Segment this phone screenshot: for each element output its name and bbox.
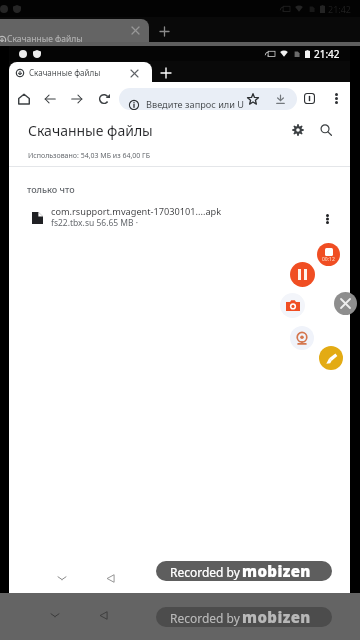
button[interactable]: New tab xyxy=(155,22,173,40)
button[interactable]: Draw xyxy=(319,346,343,370)
button[interactable]: Forward xyxy=(66,88,88,110)
button[interactable]: Stop recording xyxy=(317,243,340,266)
button[interactable]: Close tab xyxy=(127,22,143,38)
button[interactable]: Pause recording xyxy=(290,262,315,287)
button[interactable]: Back xyxy=(99,567,121,589)
staticText: Скачанные файлы xyxy=(29,67,101,78)
button[interactable]: Скачанные файлы xyxy=(0,19,149,44)
button[interactable]: Reload xyxy=(93,88,115,110)
button[interactable]: More options xyxy=(326,88,347,109)
staticText: mobizen xyxy=(242,607,311,627)
staticText: 21:42 xyxy=(314,47,340,61)
staticText: Скачанные файлы xyxy=(28,121,153,140)
staticText: только что xyxy=(27,183,75,195)
staticText: Использовано: 54,03 МБ из 64,00 ГБ xyxy=(28,151,150,161)
button[interactable]: Screenshot xyxy=(280,293,305,318)
staticText: 00:12 xyxy=(322,256,335,263)
staticText: mobizen xyxy=(242,561,311,581)
button[interactable]: Tabs xyxy=(299,88,320,109)
staticText: Recorded by xyxy=(170,564,240,580)
button[interactable]: Введите запрос или U xyxy=(119,88,297,110)
button[interactable]: More options xyxy=(316,207,339,230)
button[interactable]: Hide keyboard xyxy=(44,604,66,626)
button[interactable]: New tab xyxy=(157,64,175,82)
button[interactable]: Hide keyboard xyxy=(51,567,73,589)
staticText: Скачанные файлы xyxy=(7,33,83,44)
button[interactable]: Bookmark xyxy=(242,88,264,110)
staticText: Recorded by xyxy=(170,610,240,626)
button[interactable]: Settings xyxy=(286,118,309,141)
button[interactable]: Home xyxy=(13,88,35,110)
button[interactable]: Back xyxy=(39,88,61,110)
button[interactable]: Back xyxy=(92,604,114,626)
staticText: fs22.tbx.su 56.65 MB · xyxy=(51,217,139,229)
button[interactable]: Search xyxy=(314,118,337,141)
button[interactable]: Скачанные файлы xyxy=(9,62,152,82)
button[interactable]: Front camera xyxy=(290,326,314,350)
staticText: Введите запрос или U xyxy=(146,98,245,110)
button[interactable]: Close tab xyxy=(126,65,142,81)
staticText: com.rsupport.mvagent-17030101....apk xyxy=(51,205,222,218)
button[interactable]: Downloads xyxy=(269,88,291,110)
button[interactable]: Close xyxy=(334,292,357,315)
button[interactable]: com.rsupport.mvagent-17030101....apk xyxy=(9,200,350,234)
staticText: 21:42 xyxy=(328,3,352,15)
